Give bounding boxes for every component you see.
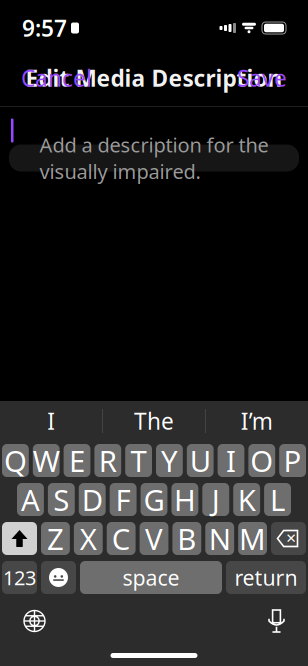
button[interactable]: U [187, 444, 214, 477]
button[interactable]: C [107, 522, 136, 555]
button[interactable]: L [264, 483, 291, 516]
staticText: X [80, 519, 97, 558]
staticText: E [69, 441, 85, 480]
button[interactable]: Switch keyboard [16, 602, 53, 639]
button[interactable]: B [172, 522, 201, 555]
button[interactable]: W [33, 444, 60, 477]
staticText: J [212, 480, 220, 519]
staticText: Add a description for the visually impai… [39, 131, 268, 184]
button[interactable]: D [79, 483, 106, 516]
staticText: H [174, 480, 196, 519]
button[interactable]: F [110, 483, 137, 516]
staticText: K [238, 480, 256, 519]
staticText: T [131, 441, 147, 480]
staticText: F [116, 480, 131, 519]
button[interactable]: S [48, 483, 75, 516]
staticText: 9:57 [22, 13, 67, 43]
staticText: C [112, 519, 131, 558]
button[interactable]: Save [227, 55, 297, 101]
button[interactable]: I [0, 401, 102, 441]
button[interactable]: R [94, 444, 121, 477]
staticText: G [143, 480, 164, 519]
button[interactable]: Y [156, 444, 183, 477]
button[interactable]: I’m [206, 401, 308, 441]
button[interactable]: O [248, 444, 275, 477]
button[interactable]: I [218, 444, 244, 477]
staticText: Q [4, 441, 27, 480]
staticText: B [177, 519, 196, 558]
staticText: U [190, 441, 211, 480]
button[interactable]: M [238, 522, 267, 555]
staticText: R [99, 441, 117, 480]
staticText: P [284, 441, 302, 480]
button[interactable]: Z [41, 522, 70, 555]
button[interactable]: X [74, 522, 103, 555]
button[interactable]: Shift [2, 522, 37, 555]
button[interactable]: Q [2, 444, 29, 477]
button[interactable]: return [226, 561, 306, 594]
button[interactable]: J [202, 483, 229, 516]
staticText: W [33, 441, 60, 480]
staticText: V [145, 519, 163, 558]
button[interactable]: N [205, 522, 234, 555]
button[interactable]: P [279, 444, 306, 477]
button[interactable]: The [103, 401, 205, 441]
staticText: I [226, 441, 236, 480]
staticText: O [250, 441, 273, 480]
button[interactable]: H [171, 483, 198, 516]
button[interactable]: Emoji [41, 561, 76, 594]
staticText: M [239, 519, 266, 558]
staticText: ✕ [285, 531, 296, 546]
button[interactable]: K [233, 483, 260, 516]
button[interactable]: 123 [2, 561, 37, 594]
staticText: Z [47, 519, 64, 558]
button[interactable]: V [140, 522, 168, 555]
button[interactable]: Dictation [261, 602, 292, 640]
button[interactable]: Add a description for the visually impai… [9, 144, 299, 171]
staticText: Save [237, 63, 287, 93]
button[interactable]: T [125, 444, 152, 477]
staticText: space [122, 563, 179, 592]
button[interactable]: space [80, 561, 222, 594]
staticText: S [53, 480, 69, 519]
staticText: N [209, 519, 231, 558]
staticText: A [21, 480, 40, 519]
staticText: 123 [3, 564, 36, 591]
staticText: I’m [241, 406, 273, 436]
staticText: return [234, 563, 297, 592]
staticText: Y [161, 441, 178, 480]
button[interactable]: E [64, 444, 90, 477]
staticText: D [82, 480, 103, 519]
staticText: Cancel [21, 63, 92, 93]
staticText: Edit Media Description [25, 63, 282, 93]
staticText: I [47, 406, 55, 436]
staticText: L [270, 480, 285, 519]
button[interactable]: A [17, 483, 44, 516]
button[interactable]: Cancel [11, 55, 102, 101]
button[interactable]: G [141, 483, 167, 516]
button[interactable]: Delete [271, 522, 306, 555]
staticText: The [134, 406, 174, 436]
